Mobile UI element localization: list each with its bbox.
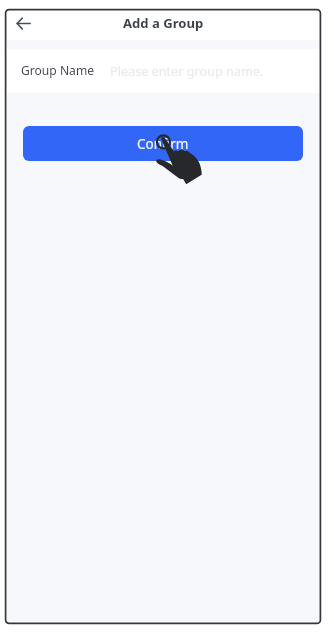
button[interactable]: Back — [8, 8, 39, 38]
staticText: Add a Group — [123, 14, 204, 32]
button[interactable]: Confirm — [23, 126, 303, 161]
button[interactable]: Group Name — [7, 49, 320, 93]
staticText: Please enter group name. — [110, 62, 264, 79]
staticText: Confirm — [137, 135, 189, 153]
staticText: Group Name — [21, 62, 95, 78]
